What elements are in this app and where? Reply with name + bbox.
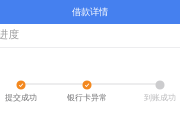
staticText: 提交成功: [5, 93, 37, 102]
button[interactable]: 银行卡异常: [64, 80, 110, 102]
button[interactable]: 到账成功: [137, 80, 180, 102]
staticText: 进度: [0, 28, 19, 41]
staticText: 借款详情: [72, 6, 108, 18]
staticText: 到账成功: [144, 93, 176, 102]
staticText: 银行卡异常: [67, 93, 107, 102]
button[interactable]: 提交成功: [0, 80, 44, 102]
